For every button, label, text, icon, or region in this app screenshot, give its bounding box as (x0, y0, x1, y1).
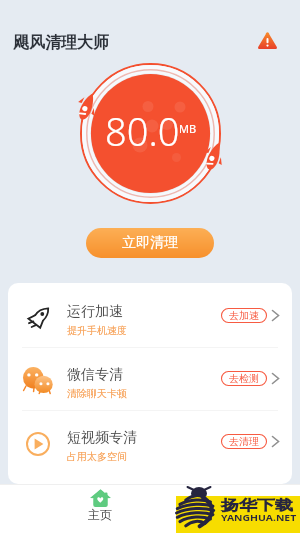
staticText: 占用太多空间 (67, 450, 127, 463)
staticText: 清除聊天卡顿 (67, 387, 127, 400)
button[interactable]: 去清理 (221, 434, 267, 449)
button[interactable]: 主页 (60, 486, 140, 522)
button[interactable]: 去加速 (221, 308, 267, 323)
staticText: 提升手机速度 (67, 324, 127, 337)
staticText: MB (179, 121, 197, 136)
staticText: YANGHUA.NET (221, 511, 297, 524)
staticText: 运行加速 (67, 303, 123, 321)
staticText: 80.0 (105, 105, 180, 157)
staticText: 主页 (88, 507, 112, 522)
button[interactable]: 微信专清 (8, 348, 292, 410)
staticText: 飓风清理大师 (13, 33, 109, 53)
staticText: 去加速 (229, 309, 259, 322)
button[interactable]: 短视频专清 (8, 411, 292, 473)
staticText: 去检测 (229, 372, 259, 385)
button[interactable]: 飓风清理大师 (13, 33, 109, 53)
button[interactable]: Warning (256, 29, 280, 53)
staticText: 去清理 (229, 435, 259, 448)
staticText: 短视频专清 (67, 429, 137, 447)
staticText: 微信专清 (67, 366, 123, 384)
staticText: 扬华下载 (221, 497, 293, 515)
button[interactable]: 立即清理 (86, 228, 214, 258)
button[interactable]: 运行加速 (8, 285, 292, 347)
button[interactable]: 去检测 (221, 371, 267, 386)
staticText: 立即清理 (122, 234, 178, 252)
